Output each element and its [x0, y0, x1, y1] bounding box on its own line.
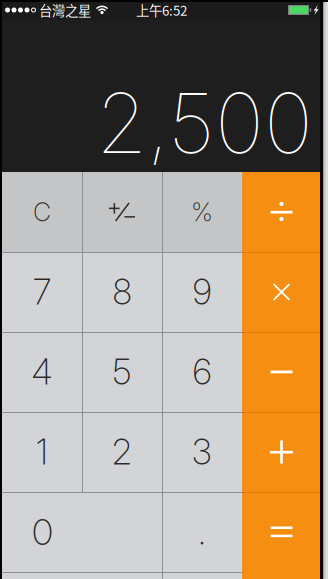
- button[interactable]: C: [2, 172, 82, 252]
- button[interactable]: Plus minus: [82, 172, 162, 252]
- button[interactable]: 6: [162, 332, 242, 412]
- staticText: 0: [32, 510, 53, 554]
- button[interactable]: Minus: [242, 332, 321, 412]
- staticText: 上午6:52: [136, 0, 187, 20]
- button[interactable]: Equals: [242, 492, 321, 572]
- staticText: 4: [31, 351, 52, 393]
- staticText: C: [33, 197, 51, 227]
- staticText: 3: [192, 431, 212, 473]
- staticText: 9: [192, 271, 211, 313]
- staticText: %: [191, 197, 213, 227]
- button[interactable]: .: [162, 492, 242, 572]
- button[interactable]: 5: [82, 332, 162, 412]
- staticText: 2,500: [96, 73, 313, 173]
- button[interactable]: 3: [162, 412, 242, 492]
- staticText: 6: [192, 351, 211, 393]
- button[interactable]: 7: [2, 252, 82, 332]
- button[interactable]: 8: [82, 252, 162, 332]
- button[interactable]: Multiply: [242, 252, 321, 332]
- staticText: 5: [112, 351, 131, 393]
- staticText: .: [198, 511, 206, 553]
- button[interactable]: Divide: [242, 172, 321, 252]
- staticText: 8: [112, 271, 131, 313]
- button[interactable]: 4: [2, 332, 82, 412]
- button[interactable]: Plus: [242, 412, 321, 492]
- button[interactable]: %: [162, 172, 242, 252]
- staticText: 台灣之星: [39, 0, 91, 20]
- staticText: 2: [112, 431, 132, 473]
- button[interactable]: 9: [162, 252, 242, 332]
- staticText: 1: [36, 431, 48, 473]
- button[interactable]: 2: [82, 412, 162, 492]
- staticText: 7: [33, 271, 51, 313]
- button[interactable]: 0: [2, 492, 162, 572]
- button[interactable]: 1: [2, 412, 82, 492]
